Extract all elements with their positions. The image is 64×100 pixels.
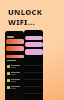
button[interactable] [7, 84, 22, 91]
button[interactable] [25, 49, 43, 55]
button[interactable] [24, 66, 43, 73]
button[interactable] [7, 77, 22, 84]
button[interactable] [6, 46, 24, 51]
button[interactable] [24, 87, 43, 94]
button[interactable] [25, 36, 43, 40]
button[interactable] [7, 63, 22, 70]
button[interactable] [6, 55, 24, 58]
staticText: UNLOCK [8, 7, 43, 17]
button[interactable] [24, 73, 43, 80]
button[interactable] [7, 70, 22, 77]
button[interactable] [24, 80, 43, 87]
button[interactable] [25, 42, 43, 47]
button[interactable] [6, 39, 24, 44]
staticText: WIFI... [8, 17, 35, 27]
button[interactable] [24, 59, 43, 66]
